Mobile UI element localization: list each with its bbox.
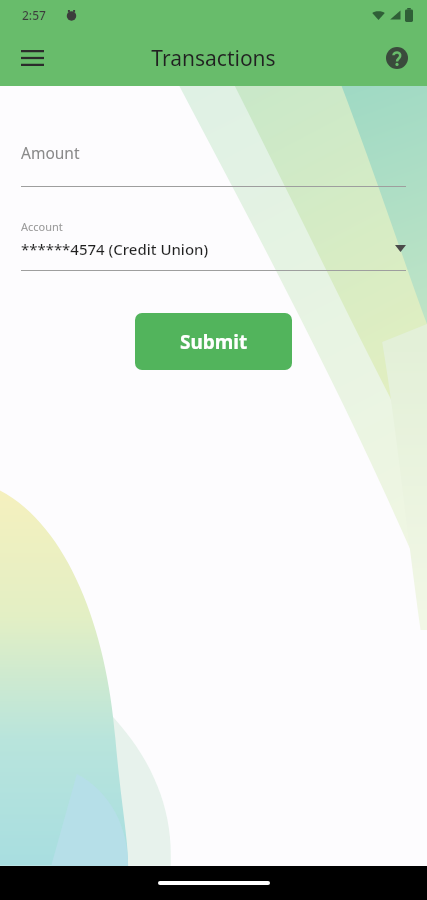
button[interactable]: Help bbox=[375, 36, 419, 80]
button[interactable]: Amount bbox=[21, 142, 406, 186]
staticText: Transactions bbox=[151, 44, 276, 73]
staticText: 2:57 bbox=[22, 7, 46, 23]
staticText: Submit bbox=[180, 329, 248, 355]
button[interactable]: Submit bbox=[135, 313, 292, 370]
button[interactable]: Open navigation menu bbox=[8, 34, 56, 82]
staticText: Account bbox=[21, 219, 63, 234]
staticText: Amount bbox=[21, 142, 80, 163]
button[interactable]: Account bbox=[21, 219, 406, 270]
staticText: ******4574 (Credit Union) bbox=[21, 239, 209, 259]
